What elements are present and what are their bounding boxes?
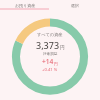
staticText: すべての資産 xyxy=(37,32,63,37)
staticText: お預り資産 xyxy=(15,3,36,8)
staticText: 3,373 xyxy=(36,39,60,51)
staticText: 評価損益 xyxy=(43,52,58,57)
staticText: 円 xyxy=(60,45,65,51)
button[interactable]: お預り資産 xyxy=(0,0,50,10)
button[interactable]: 選択 xyxy=(50,0,100,10)
staticText: 選択 xyxy=(71,3,79,8)
staticText: +0.41 % xyxy=(42,67,58,73)
staticText: 円 xyxy=(54,61,58,66)
staticText: +14 xyxy=(42,57,54,66)
